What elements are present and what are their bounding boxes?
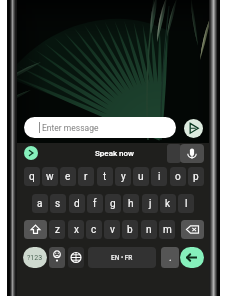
button[interactable]: d	[69, 194, 85, 213]
button[interactable]: k	[160, 194, 176, 213]
staticText: v	[110, 224, 115, 236]
staticText: w	[46, 171, 54, 183]
button[interactable]: n	[141, 220, 157, 239]
staticText: g	[110, 198, 116, 210]
staticText: r	[84, 171, 88, 183]
button[interactable]: j	[142, 194, 158, 213]
staticText: s	[55, 198, 61, 210]
button[interactable]: Enter	[180, 247, 204, 268]
staticText: p	[193, 171, 199, 183]
staticText: m	[163, 224, 172, 236]
button[interactable]: p	[188, 167, 204, 186]
staticText: f	[93, 198, 97, 210]
staticText: .	[169, 252, 172, 264]
button[interactable]: Shift	[24, 220, 47, 239]
staticText: k	[165, 198, 171, 210]
button[interactable]: u	[133, 167, 149, 186]
staticText: q	[29, 171, 35, 183]
button[interactable]: a	[32, 194, 48, 213]
button[interactable]: f	[87, 194, 103, 213]
staticText: o	[175, 171, 181, 183]
button[interactable]: o	[170, 167, 186, 186]
staticText: Enter message	[42, 123, 99, 133]
staticText: c	[91, 224, 97, 236]
staticText: a	[37, 198, 43, 210]
button[interactable]: Backspace	[181, 220, 204, 239]
staticText: y	[121, 171, 126, 183]
button[interactable]: .	[161, 247, 179, 268]
staticText: z	[55, 224, 60, 236]
button[interactable]: t	[97, 167, 113, 186]
staticText: l	[185, 198, 188, 210]
staticText: d	[74, 198, 80, 210]
button[interactable]: h	[123, 194, 139, 213]
staticText: Speak now	[95, 149, 135, 158]
button[interactable]: i	[151, 167, 167, 186]
staticText: u	[138, 171, 144, 183]
staticText: j	[149, 198, 152, 210]
staticText: h	[128, 198, 134, 210]
button[interactable]: q	[24, 167, 40, 186]
button[interactable]: Enter message	[24, 117, 176, 138]
button[interactable]: ?123	[23, 247, 47, 268]
button[interactable]: Emoji	[49, 247, 65, 268]
button[interactable]: x	[68, 220, 84, 239]
staticText: ?123	[27, 254, 43, 262]
staticText: x	[74, 224, 79, 236]
button[interactable]: Voice input	[180, 144, 204, 163]
button[interactable]: e	[60, 167, 76, 186]
button[interactable]: l	[178, 194, 194, 213]
staticText: EN • FR	[111, 254, 133, 262]
button[interactable]: v	[104, 220, 120, 239]
button[interactable]: c	[86, 220, 102, 239]
button[interactable]: Expand toolbar	[24, 146, 38, 160]
button[interactable]: s	[50, 194, 66, 213]
button[interactable]: m	[159, 220, 175, 239]
staticText: n	[146, 224, 152, 236]
button[interactable]: EN • FR	[88, 247, 156, 268]
button[interactable]: r	[78, 167, 94, 186]
button[interactable]: w	[42, 167, 58, 186]
staticText: t	[103, 171, 107, 183]
staticText: b	[127, 224, 133, 236]
button[interactable]: b	[122, 220, 138, 239]
button[interactable]: Send	[184, 119, 203, 138]
staticText: i	[158, 171, 161, 183]
staticText: e	[65, 171, 71, 183]
button[interactable]: z	[49, 220, 65, 239]
button[interactable]: Change language	[68, 247, 84, 268]
button[interactable]: g	[105, 194, 121, 213]
button[interactable]: y	[115, 167, 131, 186]
